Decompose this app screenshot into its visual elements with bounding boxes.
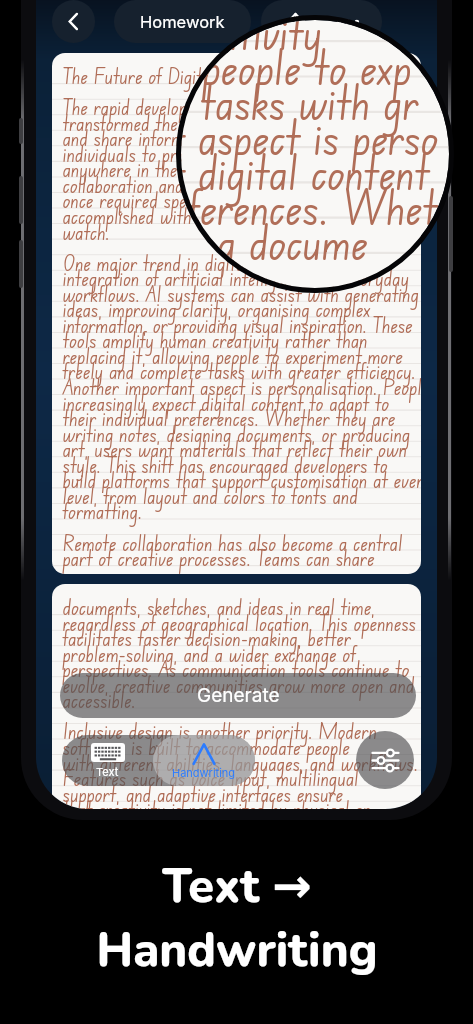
staticText: Another important aspect is personalisat… <box>63 374 421 400</box>
staticText: documents, sketches, and ideas in real t… <box>63 594 376 620</box>
staticText: watch. <box>63 219 110 245</box>
button[interactable]: Handwriting <box>153 735 255 786</box>
staticText: accomplished with a few taps on a phone … <box>63 203 377 229</box>
staticText: perspectives. As communication tools con… <box>63 656 410 682</box>
staticText: evolve, creative communities grow more o… <box>63 672 415 698</box>
staticText: build platforms that support customisati… <box>63 467 421 493</box>
staticText: creativity g people to exp e tasks with … <box>181 20 439 270</box>
staticText: Homework <box>140 12 225 32</box>
staticText: level, from layout and colors to fonts a… <box>63 483 359 509</box>
staticText: Features such as voice input, multilingu… <box>63 765 359 791</box>
staticText: ideas, improving clarity, organising com… <box>63 296 371 322</box>
staticText: style. This shift has encouraged develop… <box>63 452 389 478</box>
staticText: increasingly expect digital content to a… <box>63 390 390 416</box>
staticText: support, and adaptive interfaces ensure <box>63 781 344 807</box>
staticText: freely and complete tasks with greater e… <box>63 358 416 384</box>
staticText: collaboration and greater flexibility. T… <box>63 172 397 198</box>
staticText: The Future of Digital Creation <box>63 63 283 89</box>
staticText: Generate <box>197 684 280 707</box>
staticText: integration of artificial intelligence i… <box>63 265 410 291</box>
button[interactable]: Homework <box>114 0 251 43</box>
button[interactable]: Back <box>52 0 95 43</box>
staticText: workflows. AI systems can assist with ge… <box>63 281 420 307</box>
button[interactable]: Text <box>62 735 153 786</box>
staticText: replacing it, allowing people to experim… <box>63 343 404 369</box>
staticText: Handwriting <box>96 918 378 982</box>
staticText: facilitates faster decision-making, bett… <box>63 625 352 651</box>
staticText: Handwriting <box>172 766 236 779</box>
button[interactable]: Generate <box>60 673 416 718</box>
staticText: regardless of geographical location. Thi… <box>63 610 417 636</box>
staticText: Text → <box>162 854 312 918</box>
staticText: accessible. <box>63 687 136 713</box>
staticText: part of creative processes. Teams can sh… <box>63 545 375 571</box>
staticText: anywhere in the world, enabling faster <box>63 156 340 182</box>
staticText: formatting. <box>63 498 143 524</box>
staticText: art, users want materials that reflect t… <box>63 436 408 462</box>
staticText: software is built to accommodate people <box>63 734 351 760</box>
staticText: The rapid development of digital tools h… <box>63 94 362 120</box>
button[interactable]: Share <box>275 2 315 42</box>
staticText: problem-solving, and a wider exchange of <box>63 641 357 667</box>
staticText: with different abilities, languages, and… <box>63 750 419 776</box>
staticText: tools amplify human creativity rather th… <box>63 327 368 353</box>
staticText: Remote collaboration has also become a c… <box>63 530 403 556</box>
staticText: information, or providing visual inspira… <box>63 312 414 338</box>
staticText: Text <box>96 765 119 778</box>
button[interactable]: More options <box>328 2 368 42</box>
staticText: and share information. Technology now al… <box>63 125 391 151</box>
staticText: One major trend in digital creation is t… <box>63 250 358 276</box>
button[interactable]: Settings <box>356 731 414 789</box>
staticText: Inclusive design is another priority. Mo… <box>63 718 378 744</box>
staticText: that creativity is not limited by physic… <box>63 796 371 809</box>
staticText: individuals to produce high-quality work… <box>63 141 389 167</box>
staticText: once required specialised software can n… <box>63 187 393 213</box>
staticText: writing notes, designing documents, or p… <box>63 421 411 447</box>
staticText: their individual preferences. Whether th… <box>63 405 396 431</box>
staticText: transformed the way people create, organ… <box>63 110 386 136</box>
